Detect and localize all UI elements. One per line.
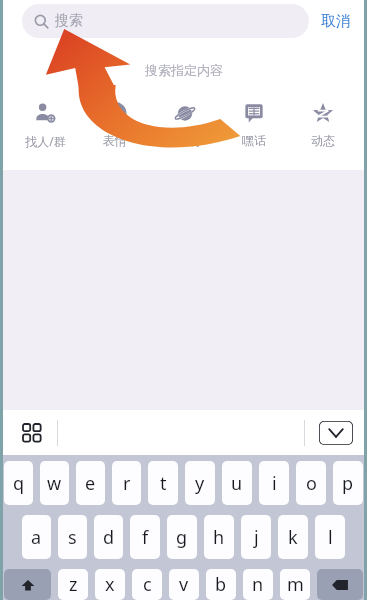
button[interactable]: Backspace <box>317 569 363 600</box>
button[interactable]: m <box>280 569 310 600</box>
staticText: q <box>13 471 25 496</box>
button[interactable]: z <box>58 569 88 600</box>
button[interactable]: v <box>169 569 199 600</box>
button[interactable]: 表情 <box>80 98 150 150</box>
staticText: n <box>252 572 264 597</box>
staticText: 小程序 <box>167 133 203 148</box>
button[interactable]: Apps <box>14 415 50 451</box>
staticText: 表情 <box>103 133 127 148</box>
staticText: y <box>195 471 205 496</box>
staticText: u <box>231 471 243 496</box>
button[interactable]: h <box>204 515 234 559</box>
button[interactable]: 小程序 <box>150 98 219 150</box>
staticText: c <box>143 572 152 597</box>
staticText: z <box>69 572 78 597</box>
staticText: x <box>105 572 115 597</box>
button[interactable]: 搜索 <box>22 4 309 38</box>
button[interactable]: e <box>76 461 105 505</box>
button[interactable]: d <box>94 515 123 559</box>
button[interactable]: o <box>296 461 326 505</box>
button[interactable]: i <box>259 461 289 505</box>
staticText: 嘿话 <box>242 133 266 148</box>
staticText: w <box>47 471 62 496</box>
button[interactable]: s <box>58 515 87 559</box>
staticText: o <box>306 471 317 496</box>
button[interactable]: r <box>112 461 141 505</box>
button[interactable]: k <box>278 515 308 559</box>
staticText: 搜索指定内容 <box>145 62 223 78</box>
button[interactable]: 找人/群 <box>10 98 80 151</box>
button[interactable]: c <box>132 569 162 600</box>
staticText: v <box>179 572 189 597</box>
staticText: 搜索 <box>55 12 83 30</box>
button[interactable]: t <box>148 461 178 505</box>
staticText: f <box>142 525 149 550</box>
button[interactable]: b <box>206 569 236 600</box>
button[interactable]: Shift <box>4 569 51 600</box>
staticText: j <box>254 525 259 550</box>
staticText: e <box>85 471 96 496</box>
staticText: b <box>215 572 227 597</box>
staticText: 动态 <box>311 133 335 148</box>
button[interactable]: p <box>333 461 363 505</box>
staticText: l <box>328 525 333 550</box>
button[interactable]: n <box>243 569 273 600</box>
staticText: a <box>31 525 42 550</box>
button[interactable]: u <box>222 461 252 505</box>
button[interactable]: a <box>22 515 51 559</box>
button[interactable]: 动态 <box>288 98 357 150</box>
staticText: k <box>288 525 298 550</box>
button[interactable]: 嘿话 <box>219 98 288 150</box>
staticText: g <box>176 525 188 550</box>
button[interactable]: f <box>130 515 160 559</box>
button[interactable]: g <box>167 515 197 559</box>
staticText: d <box>103 525 115 550</box>
button[interactable]: l <box>315 515 345 559</box>
staticText: 找人/群 <box>25 133 66 149</box>
staticText: h <box>213 525 225 550</box>
button[interactable]: w <box>40 461 69 505</box>
staticText: m <box>287 572 304 597</box>
button[interactable]: y <box>185 461 215 505</box>
button[interactable]: j <box>241 515 271 559</box>
staticText: t <box>160 471 167 496</box>
button[interactable]: x <box>95 569 125 600</box>
button[interactable]: Hide keyboard <box>319 421 353 445</box>
button[interactable]: q <box>4 461 33 505</box>
staticText: s <box>68 525 77 550</box>
staticText: r <box>123 471 131 496</box>
staticText: 取消 <box>321 12 351 31</box>
button[interactable]: 取消 <box>309 12 363 31</box>
staticText: p <box>342 471 354 496</box>
staticText: i <box>272 471 277 496</box>
